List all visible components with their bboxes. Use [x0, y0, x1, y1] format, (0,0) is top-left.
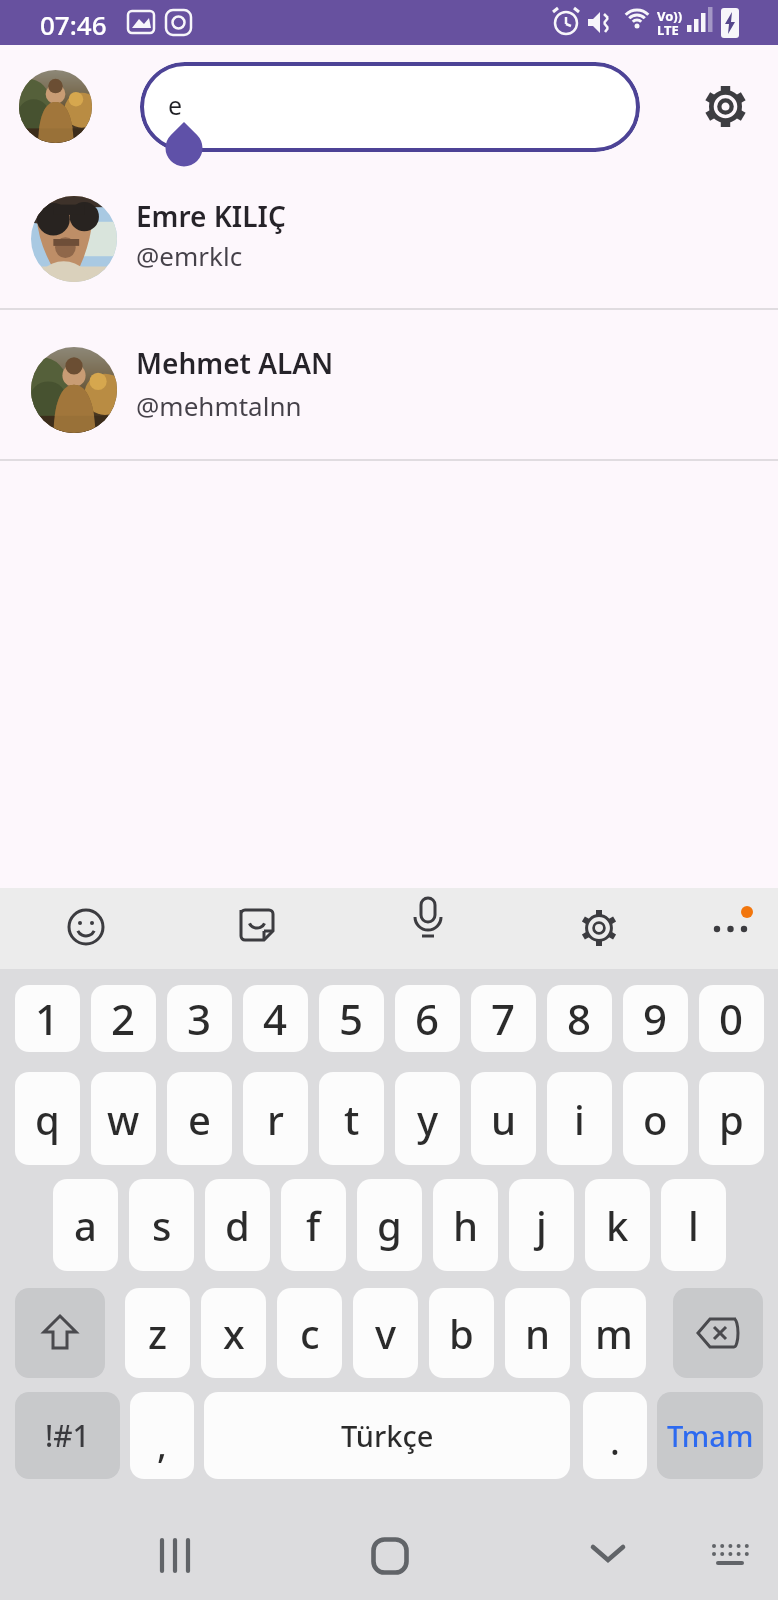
button[interactable]: 6 [395, 985, 460, 1052]
button[interactable]: l [661, 1179, 726, 1271]
button[interactable]: s [129, 1179, 194, 1271]
staticText: 1 [35, 990, 60, 1047]
staticText: @mehmtalnn [136, 388, 302, 423]
button[interactable] [710, 1541, 754, 1575]
staticText: e [188, 1092, 211, 1146]
button[interactable]: Tmam [657, 1392, 763, 1479]
button[interactable]: z [125, 1288, 190, 1378]
button[interactable]: p [699, 1072, 764, 1165]
button[interactable]: i [547, 1072, 612, 1165]
button[interactable] [237, 898, 277, 938]
staticText: n [525, 1306, 551, 1360]
staticText: 8 [567, 990, 592, 1047]
button[interactable]: m [581, 1288, 646, 1378]
staticText: v [375, 1306, 397, 1360]
staticText: f [306, 1198, 321, 1252]
staticText: h [453, 1198, 479, 1252]
staticText: 6 [415, 990, 440, 1047]
staticText: l [688, 1198, 699, 1252]
staticText: o [643, 1092, 668, 1146]
button[interactable]: q [15, 1072, 80, 1165]
staticText: b [449, 1306, 474, 1360]
button[interactable] [705, 86, 746, 127]
button[interactable]: Emre KILIÇ [0, 177, 778, 308]
button[interactable] [371, 1537, 409, 1575]
button[interactable]: c [277, 1288, 342, 1378]
staticText: Türkçe [341, 1416, 434, 1455]
button[interactable]: 1 [15, 985, 80, 1052]
staticText: d [225, 1198, 250, 1252]
button[interactable]: t [319, 1072, 384, 1165]
button[interactable]: r [243, 1072, 308, 1165]
staticText: 3 [187, 990, 212, 1047]
staticText: LTE [657, 21, 679, 39]
staticText: z [148, 1306, 168, 1360]
staticText: @emrklc [136, 238, 243, 273]
button[interactable]: x [201, 1288, 266, 1378]
button[interactable]: . [583, 1392, 647, 1479]
button[interactable] [581, 910, 617, 946]
button[interactable]: k [585, 1179, 650, 1271]
staticText: k [606, 1198, 629, 1252]
button[interactable] [15, 1288, 105, 1378]
staticText: q [35, 1092, 60, 1146]
staticText: 9 [643, 990, 668, 1047]
staticText: w [107, 1092, 140, 1146]
staticText: , [157, 1420, 167, 1469]
button[interactable]: b [429, 1288, 494, 1378]
staticText: g [377, 1198, 402, 1252]
button[interactable]: 3 [167, 985, 232, 1052]
staticText: 4 [263, 990, 288, 1047]
staticText: Vo)) [657, 7, 683, 25]
button[interactable]: j [509, 1179, 574, 1271]
button[interactable]: u [471, 1072, 536, 1165]
button[interactable]: d [205, 1179, 270, 1271]
staticText: . [610, 1417, 620, 1466]
button[interactable]: h [433, 1179, 498, 1271]
button[interactable]: Mehmet ALAN [0, 310, 778, 459]
button[interactable]: v [353, 1288, 418, 1378]
button[interactable]: !#1 [15, 1392, 120, 1479]
button[interactable] [66, 898, 106, 938]
button[interactable]: o [623, 1072, 688, 1165]
staticText: Emre KILIÇ [136, 197, 286, 235]
staticText: !#1 [45, 1415, 90, 1456]
button[interactable]: n [505, 1288, 570, 1378]
button[interactable] [709, 896, 769, 952]
staticText: 07:46 [40, 7, 107, 42]
button[interactable]: 2 [91, 985, 156, 1052]
staticText: 2 [111, 990, 136, 1047]
staticText: 7 [491, 990, 516, 1047]
staticText: 5 [339, 990, 364, 1047]
button[interactable]: a [53, 1179, 118, 1271]
staticText: Mehmet ALAN [136, 344, 334, 382]
button[interactable] [408, 896, 448, 936]
staticText: m [595, 1306, 633, 1360]
button[interactable]: y [395, 1072, 460, 1165]
button[interactable]: f [281, 1179, 346, 1271]
staticText: j [536, 1198, 547, 1252]
button[interactable] [673, 1288, 763, 1378]
button[interactable]: e [140, 62, 640, 152]
button[interactable]: g [357, 1179, 422, 1271]
button[interactable]: 4 [243, 985, 308, 1052]
staticText: t [344, 1092, 360, 1146]
staticText: Tmam [667, 1416, 754, 1455]
staticText: i [574, 1092, 585, 1146]
staticText: x [223, 1306, 245, 1360]
button[interactable]: , [130, 1392, 194, 1479]
button[interactable]: Türkçe [204, 1392, 570, 1479]
button[interactable] [589, 1543, 627, 1569]
button[interactable]: 0 [699, 985, 764, 1052]
staticText: s [152, 1198, 172, 1252]
button[interactable]: 8 [547, 985, 612, 1052]
staticText: e [168, 88, 183, 122]
staticText: u [491, 1092, 517, 1146]
button[interactable]: 5 [319, 985, 384, 1052]
button[interactable] [156, 1535, 200, 1579]
staticText: r [267, 1092, 284, 1146]
button[interactable]: 9 [623, 985, 688, 1052]
button[interactable]: 7 [471, 985, 536, 1052]
button[interactable]: w [91, 1072, 156, 1165]
button[interactable]: e [167, 1072, 232, 1165]
